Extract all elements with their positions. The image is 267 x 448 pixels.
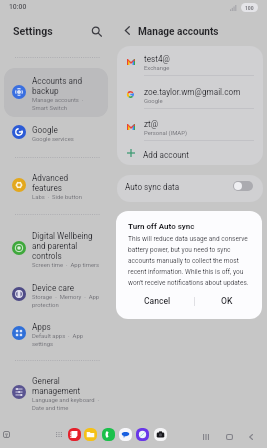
- button[interactable]: Search: [87, 22, 105, 40]
- staticText: Screen time · App timers: [32, 262, 100, 269]
- button[interactable]: [117, 141, 263, 166]
- staticText: test4@: [144, 54, 170, 64]
- staticText: Default apps · App settings: [32, 333, 84, 347]
- staticText: Language and keyboard · Date and time: [32, 397, 99, 411]
- staticText: Storage · Memory · App protection: [32, 294, 100, 308]
- button[interactable]: [117, 49, 263, 80]
- button[interactable]: Internet: [136, 428, 149, 441]
- staticText: Advanced features: [32, 173, 69, 193]
- button[interactable]: [4, 68, 108, 117]
- button[interactable]: My Files: [84, 428, 97, 441]
- button[interactable]: Settings: [11, 22, 51, 40]
- button[interactable]: Camera: [154, 428, 167, 441]
- button[interactable]: Back: [119, 22, 136, 39]
- staticText: Personal (IMAP): [144, 130, 187, 137]
- staticText: Manage accounts: [138, 26, 219, 38]
- staticText: zt@: [144, 119, 159, 129]
- staticText: Labs · Side button: [32, 194, 82, 201]
- button[interactable]: OK: [195, 291, 259, 311]
- staticText: Exchange: [144, 65, 170, 72]
- button[interactable]: Recents: [203, 434, 209, 440]
- staticText: Cancel: [144, 296, 171, 306]
- staticText: Google: [144, 98, 163, 105]
- staticText: Add account: [143, 150, 190, 160]
- staticText: Accounts and backup: [32, 76, 83, 96]
- staticText: This will reduce data usage and conserve…: [128, 235, 249, 286]
- staticText: Digital Wellbeing and parental controls: [32, 231, 93, 261]
- staticText: General management: [32, 376, 81, 396]
- button[interactable]: Phone: [102, 428, 115, 441]
- button[interactable]: Back: [249, 434, 253, 440]
- staticText: Manage accounts · Smart Switch: [32, 97, 84, 111]
- staticText: 100: [245, 5, 254, 11]
- button[interactable]: Cancel: [120, 291, 194, 311]
- staticText: Turn off Auto sync: [128, 222, 195, 231]
- staticText: Google: [32, 125, 58, 135]
- button[interactable]: Manage accounts: [138, 22, 219, 39]
- button[interactable]: Messages: [119, 428, 132, 441]
- button[interactable]: Samsung Notes: [68, 428, 81, 441]
- staticText: Apps: [32, 322, 51, 332]
- staticText: Device care: [32, 283, 75, 293]
- button[interactable]: Auto sync data toggle: [233, 181, 253, 191]
- button[interactable]: [117, 175, 263, 202]
- button[interactable]: [117, 82, 263, 113]
- button[interactable]: Notifications: [3, 431, 10, 438]
- staticText: zoe.taylor.wm@gmail.com: [144, 87, 241, 97]
- staticText: OK: [221, 296, 233, 306]
- staticText: Auto sync data: [125, 182, 180, 192]
- button[interactable]: Home: [226, 434, 233, 440]
- staticText: 10:00: [9, 3, 27, 11]
- staticText: Google services: [32, 136, 74, 143]
- button[interactable]: App drawer: [56, 432, 62, 437]
- button[interactable]: [117, 114, 263, 145]
- staticText: Settings: [13, 25, 53, 37]
